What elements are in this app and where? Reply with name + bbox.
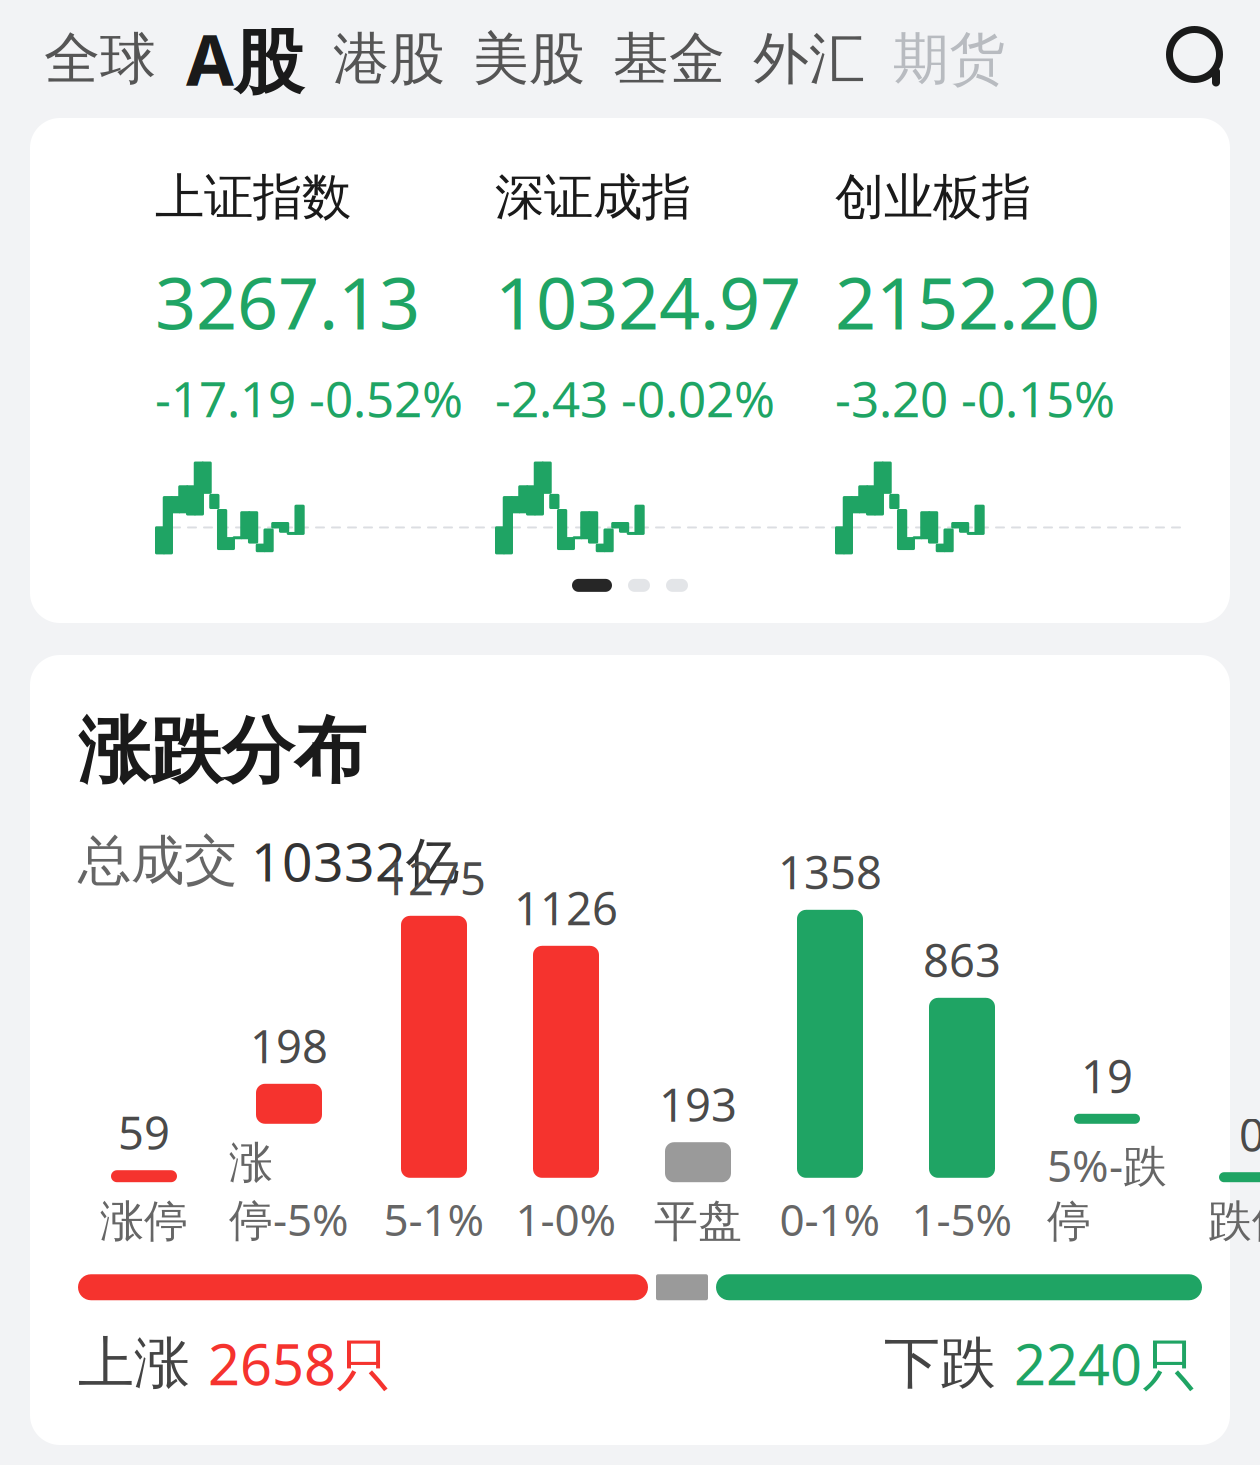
staticText: 跌停 [1208,1194,1260,1248]
staticText: 期货 [893,25,1005,93]
button[interactable]: 外汇 [739,11,879,107]
staticText: 5%-跌停 [1047,1136,1167,1248]
staticText: 1-0% [515,1190,616,1248]
staticText: 198 [250,1016,328,1076]
staticText: -3.20 -0.15% [835,365,1115,431]
staticText: 港股 [333,25,445,93]
staticText: 1358 [778,842,882,902]
staticText: 1-5% [911,1190,1012,1248]
button[interactable]: 基金 [599,11,739,107]
staticText: 1275 [382,848,486,908]
staticText: A股 [186,13,303,105]
staticText: 深证成指 [495,167,691,228]
staticText: 193 [659,1074,737,1134]
staticText: 3267.13 [155,254,420,349]
staticText: 2152.20 [835,254,1100,349]
staticText: 上涨 [78,1329,190,1398]
button[interactable]: 搜索 [1160,20,1238,98]
staticText: 涨停 [100,1194,188,1248]
staticText: 上证指数 [155,167,351,228]
staticText: 5-1% [383,1190,484,1248]
staticText: 2658只 [208,1326,392,1401]
staticText: 外汇 [753,25,865,93]
staticText: 平盘 [654,1194,742,1248]
staticText: 基金 [613,25,725,93]
staticText: 10332亿 [251,825,459,896]
staticText: 863 [923,930,1001,990]
button[interactable]: 美股 [459,11,599,107]
button[interactable]: 全球 [30,11,170,107]
staticText: 涨停-5% [229,1136,349,1248]
staticText: 59 [118,1102,170,1162]
button[interactable]: 港股 [319,11,459,107]
staticText: 创业板指 [835,167,1031,228]
staticText: 2240只 [1014,1326,1198,1401]
staticText: 19 [1081,1046,1133,1106]
button[interactable]: 创业板指 [835,167,1175,561]
staticText: -2.43 -0.02% [495,365,775,431]
button[interactable]: 上证指数 [155,167,495,561]
staticText: 10324.97 [495,254,801,349]
staticText: 0 [1239,1104,1260,1164]
staticText: -17.19 -0.52% [155,365,463,431]
staticText: 美股 [473,25,585,93]
staticText: 涨跌分布 [78,707,366,795]
staticText: 1126 [514,878,618,938]
button[interactable]: 深证成指 [495,167,835,561]
staticText: 总成交 [78,828,237,894]
staticText: 0-1% [779,1190,880,1248]
staticText: 下跌 [884,1329,996,1398]
button[interactable]: 期货 [879,11,1019,107]
staticText: 全球 [44,25,156,93]
button[interactable]: A股 [170,11,319,107]
